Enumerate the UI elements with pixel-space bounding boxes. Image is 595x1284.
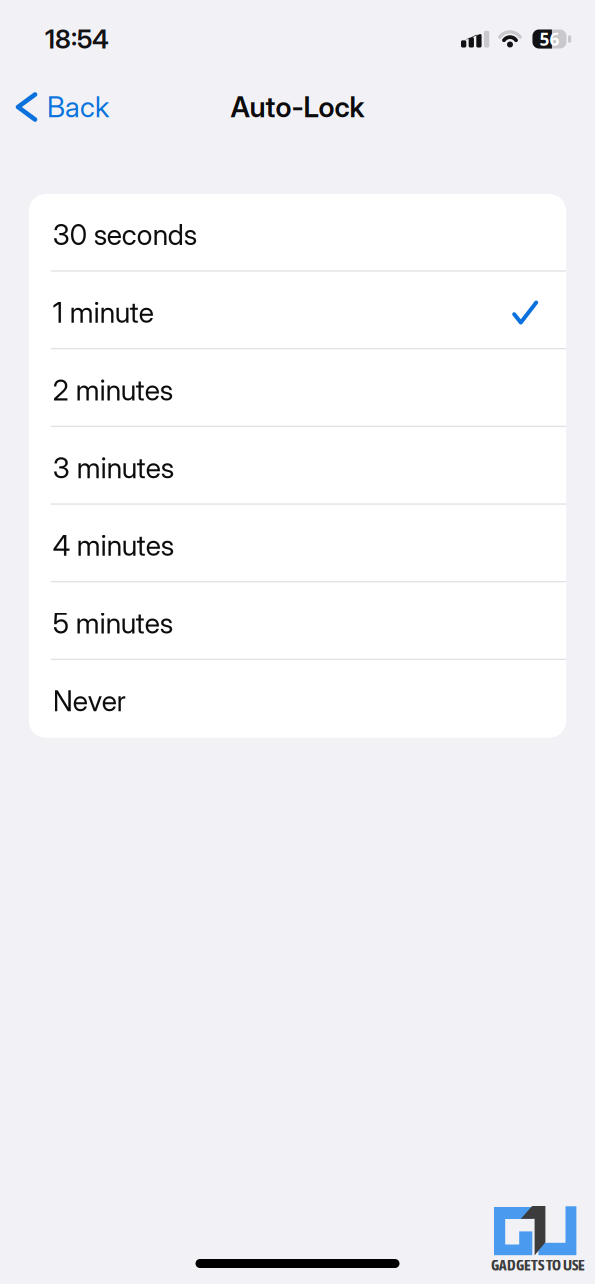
staticText: GADGETS TO USE	[491, 1256, 585, 1274]
staticText: Back	[47, 90, 109, 124]
button[interactable]: 4 minutes	[29, 505, 566, 582]
staticText: 4 minutes	[53, 528, 174, 563]
staticText: Auto-Lock	[230, 90, 364, 124]
staticText: 30 seconds	[53, 218, 197, 252]
staticText: 2 minutes	[53, 373, 173, 407]
staticText: Never	[53, 684, 126, 718]
button[interactable]: 2 minutes	[29, 349, 566, 427]
staticText: 5 minutes	[53, 606, 173, 640]
staticText: 18:54	[45, 23, 109, 55]
staticText: 3 minutes	[53, 451, 174, 485]
staticText: 1 minute	[53, 295, 154, 330]
button[interactable]: Back	[0, 85, 123, 129]
button[interactable]: 1 minute	[29, 272, 566, 349]
button[interactable]: 3 minutes	[29, 427, 566, 505]
staticText: 56	[539, 27, 559, 51]
button[interactable]: 5 minutes	[29, 582, 566, 660]
button[interactable]: 30 seconds	[29, 194, 566, 272]
button[interactable]: Never	[29, 660, 566, 738]
